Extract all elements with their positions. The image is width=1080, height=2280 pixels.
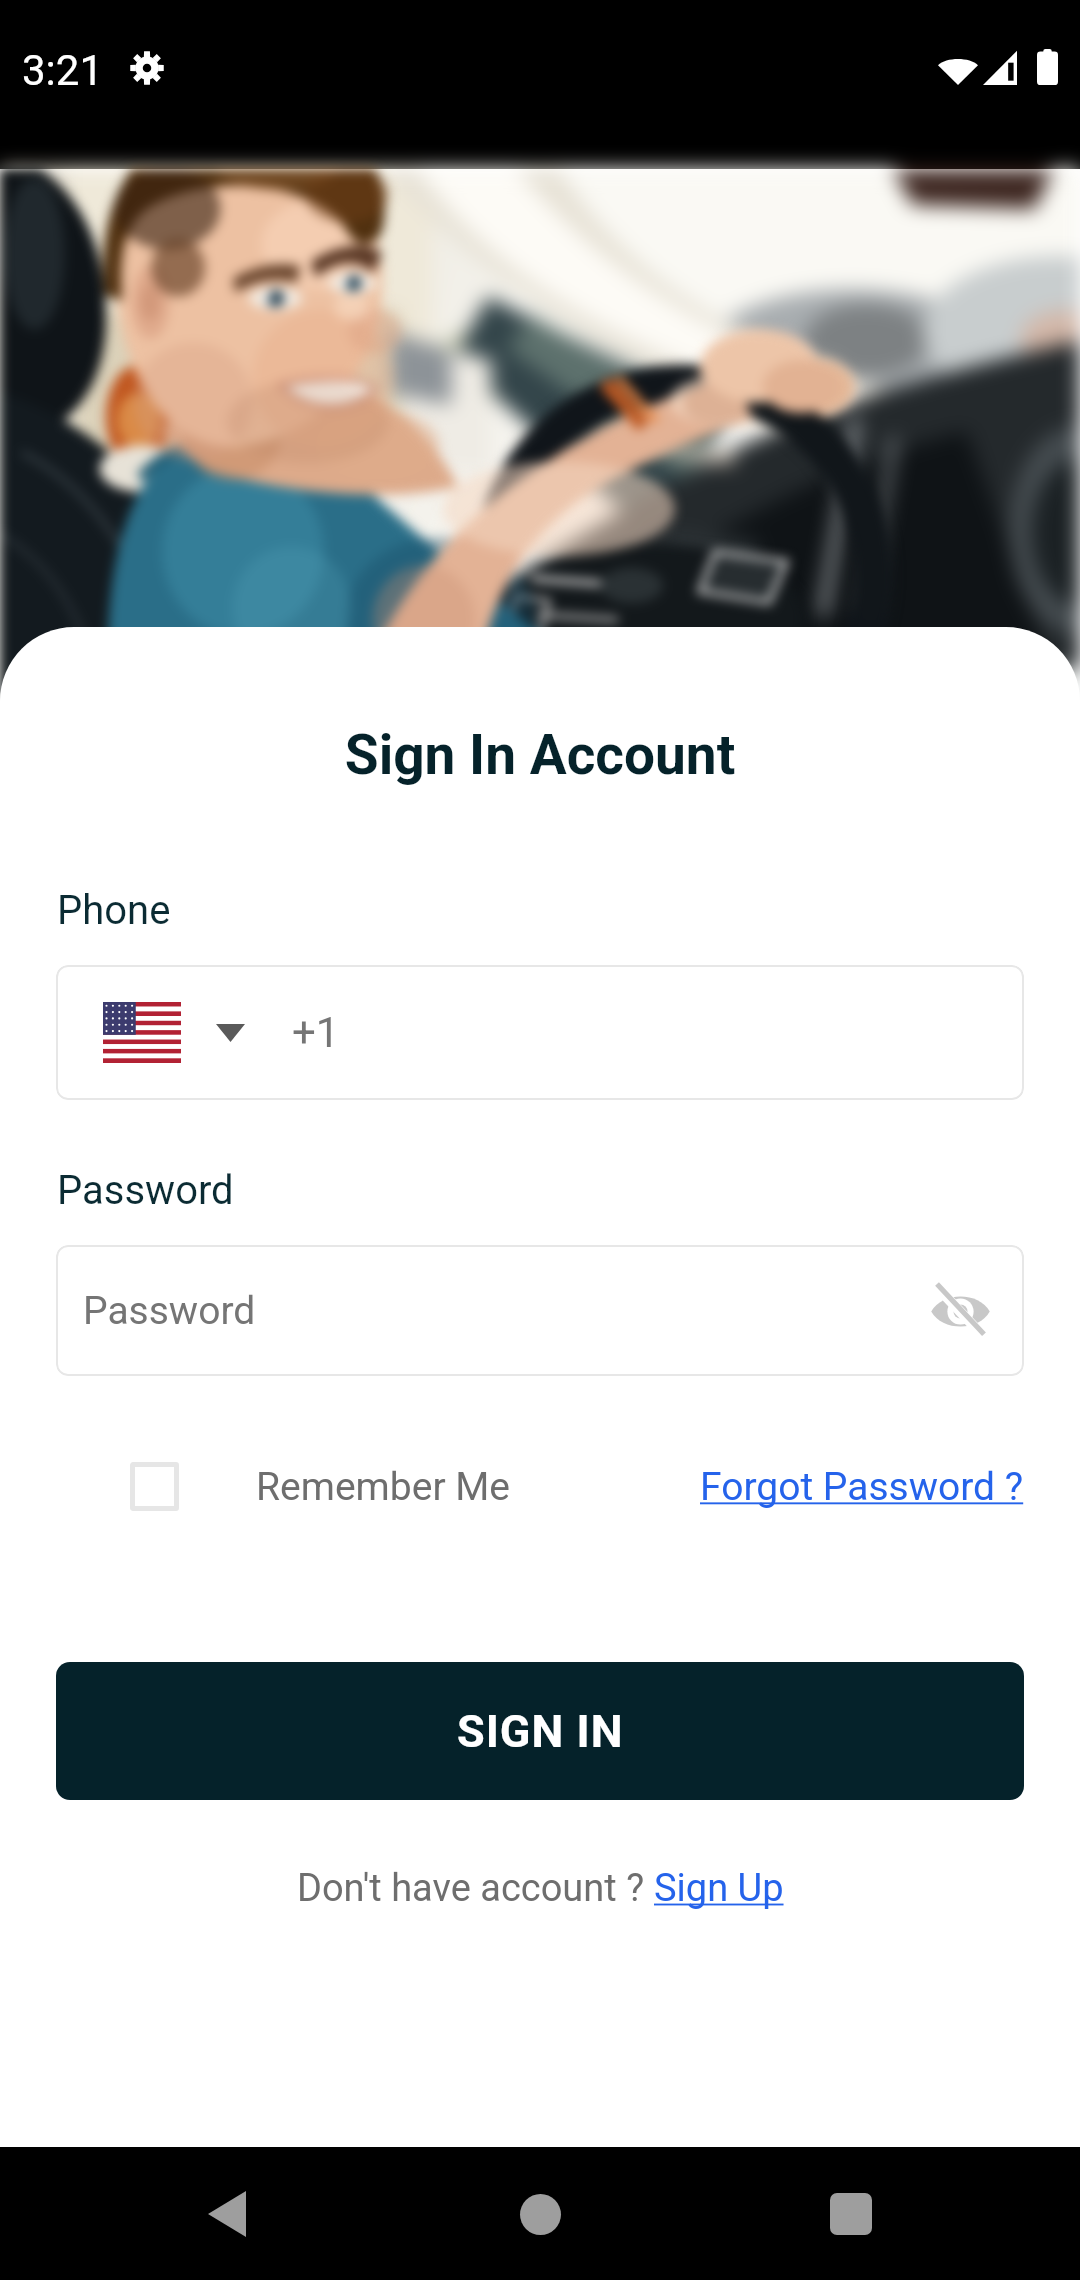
button[interactable]: SIGN IN (56, 1662, 1024, 1800)
button[interactable]: Password (56, 1245, 1024, 1376)
staticText: Sign Up (654, 1866, 784, 1911)
staticText: Forgot Password ? (700, 1464, 1024, 1510)
button[interactable]: Home (480, 2154, 600, 2274)
button[interactable]: Sign Up (654, 1866, 784, 1911)
button[interactable]: +1 (56, 965, 1024, 1100)
staticText: Don't have account ? (297, 1866, 654, 1911)
staticText: Password (83, 1288, 256, 1334)
button[interactable]: Forgot Password ? (700, 1464, 1024, 1510)
staticText: Sign In Account (0, 723, 1080, 787)
staticText: Password (57, 1167, 234, 1214)
staticText: SIGN IN (457, 1705, 624, 1758)
staticText: +1 (292, 1008, 340, 1057)
button[interactable]: Remember Me (56, 1462, 510, 1511)
staticText: Phone (57, 887, 171, 934)
button[interactable]: Back (167, 2154, 287, 2274)
button[interactable]: Recent apps (791, 2154, 911, 2274)
staticText: Remember Me (256, 1464, 510, 1510)
button[interactable]: Show password (912, 1263, 1008, 1359)
staticText: 3:21 (22, 46, 103, 95)
